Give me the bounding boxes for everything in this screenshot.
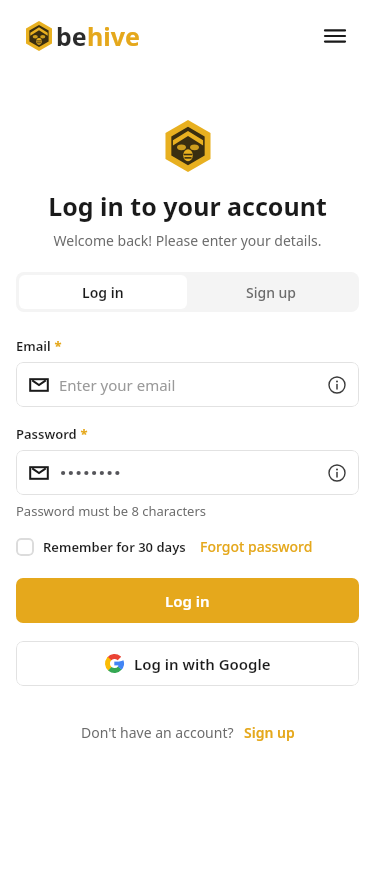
staticText: Sign up [246,283,297,302]
staticText: Enter your email [59,375,176,395]
staticText: Welcome back! Please enter your details. [0,231,375,250]
staticText: hive [87,19,140,53]
button[interactable] [16,450,359,495]
staticText: * [51,337,62,355]
button[interactable]: be [24,19,140,53]
staticText: Password [16,425,77,443]
staticText: be [56,19,87,53]
button[interactable]: Log in [16,578,359,623]
button[interactable]: Enter your email [16,362,359,407]
button[interactable]: Sign up [187,275,356,309]
staticText: Log in to your account [0,189,375,223]
button[interactable]: Sign up [244,723,295,742]
button[interactable]: Log in with Google [16,641,359,686]
staticText: Remember for 30 days [43,538,186,556]
staticText: Don't have an account? [81,723,234,742]
staticText: Log in [165,591,210,611]
button[interactable]: Log in [19,275,187,309]
staticText: Email [16,337,51,355]
button[interactable]: Forgot password [200,537,313,556]
staticText: Sign up [244,723,295,742]
button[interactable]: Menu [319,20,351,52]
staticText: Forgot password [200,537,313,556]
staticText: Password must be 8 characters [16,502,207,520]
staticText: Log in with Google [134,654,271,674]
staticText: * [77,425,88,443]
button[interactable]: Remember for 30 days [16,538,186,556]
staticText: Log in [82,283,124,302]
